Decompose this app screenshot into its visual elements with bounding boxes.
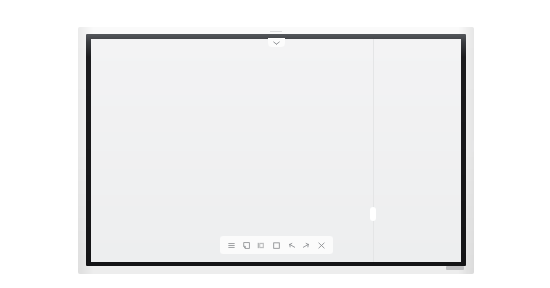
button[interactable]: Scroll handle <box>370 207 376 221</box>
button[interactable]: New page <box>241 240 252 251</box>
button[interactable]: Redo <box>301 240 312 251</box>
button[interactable]: Open menu <box>268 38 285 47</box>
button[interactable]: Menu <box>226 240 237 251</box>
button[interactable]: Frame <box>271 240 282 251</box>
button[interactable]: Roll <box>256 240 267 251</box>
button[interactable]: Undo <box>286 240 297 251</box>
button[interactable]: Close <box>316 240 327 251</box>
